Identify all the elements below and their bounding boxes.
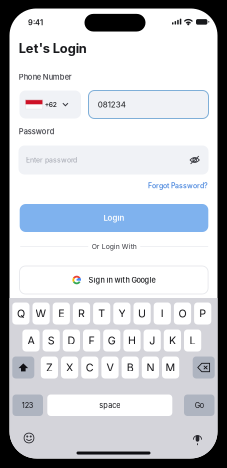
staticText: I [161, 307, 164, 320]
staticText: M [166, 361, 176, 374]
staticText: U [138, 307, 146, 320]
button[interactable]: R [73, 302, 90, 324]
staticText: V [106, 361, 113, 374]
button[interactable]: C [81, 356, 98, 378]
staticText: E [58, 307, 64, 320]
button[interactable]: F [83, 329, 100, 351]
button[interactable]: Dictation [188, 430, 206, 446]
staticText: 9:41 [28, 18, 43, 27]
button[interactable]: space [47, 394, 172, 416]
staticText: Let's Login [19, 40, 87, 56]
button[interactable]: S [43, 329, 60, 351]
staticText: Sign in with Google [89, 276, 156, 284]
staticText: H [128, 334, 136, 347]
staticText: W [36, 307, 47, 320]
staticText: Enter password [26, 156, 77, 164]
staticText: B [127, 361, 134, 374]
staticText: R [78, 307, 85, 320]
staticText: space [99, 401, 120, 410]
staticText: S [48, 334, 55, 347]
button[interactable]: X [61, 356, 78, 378]
button[interactable]: I [154, 302, 171, 324]
staticText: J [149, 334, 155, 347]
button[interactable]: E [53, 302, 70, 324]
button[interactable]: Y [113, 302, 130, 324]
button[interactable]: T [93, 302, 110, 324]
staticText: Login [103, 213, 124, 223]
button[interactable]: +62 [19, 90, 81, 118]
staticText: Z [46, 361, 53, 374]
button[interactable]: Sign in with Google [19, 266, 208, 294]
button[interactable]: 123 [12, 394, 43, 416]
button[interactable]: O [174, 302, 191, 324]
staticText: 123 [22, 401, 34, 410]
button[interactable]: J [144, 329, 161, 351]
staticText: Forgot Password? [148, 181, 208, 190]
staticText: Go [195, 401, 204, 410]
button[interactable]: A [22, 329, 40, 351]
staticText: Y [118, 307, 125, 320]
button[interactable]: M [162, 356, 179, 378]
button[interactable]: Forgot Password? [148, 180, 208, 191]
button[interactable]: Login [20, 204, 208, 232]
button[interactable]: P [194, 302, 211, 324]
staticText: T [98, 307, 105, 320]
staticText: K [169, 334, 176, 347]
staticText: Or Login With [92, 242, 137, 251]
staticText: 081234 [98, 100, 126, 109]
staticText: P [199, 307, 206, 320]
button[interactable]: Emoji keyboard [20, 430, 38, 446]
staticText: +62 [45, 100, 57, 109]
staticText: X [66, 361, 73, 374]
button[interactable]: L [184, 329, 201, 351]
button[interactable]: V [101, 356, 119, 378]
staticText: C [86, 361, 94, 374]
staticText: O [178, 307, 186, 320]
staticText: Phone Number [19, 72, 72, 81]
staticText: N [146, 361, 154, 374]
button[interactable]: U [133, 302, 151, 324]
button[interactable]: 081234 [88, 90, 208, 118]
button[interactable]: Enter password [18, 145, 208, 174]
button[interactable]: Q [12, 302, 29, 324]
button[interactable]: K [164, 329, 181, 351]
button[interactable]: W [32, 302, 50, 324]
staticText: L [190, 334, 196, 347]
button[interactable]: B [122, 356, 139, 378]
staticText: G [108, 334, 116, 347]
button[interactable]: Z [41, 356, 58, 378]
staticText: Password [19, 127, 55, 136]
staticText: F [89, 334, 95, 347]
staticText: A [27, 334, 34, 347]
button[interactable]: G [103, 329, 120, 351]
button[interactable]: Shift [12, 356, 34, 378]
button[interactable]: Go [184, 394, 214, 416]
button[interactable]: Delete [193, 356, 215, 378]
button[interactable]: H [123, 329, 141, 351]
button[interactable]: N [142, 356, 159, 378]
staticText: Q [17, 307, 25, 320]
button[interactable]: D [63, 329, 80, 351]
staticText: D [67, 334, 75, 347]
